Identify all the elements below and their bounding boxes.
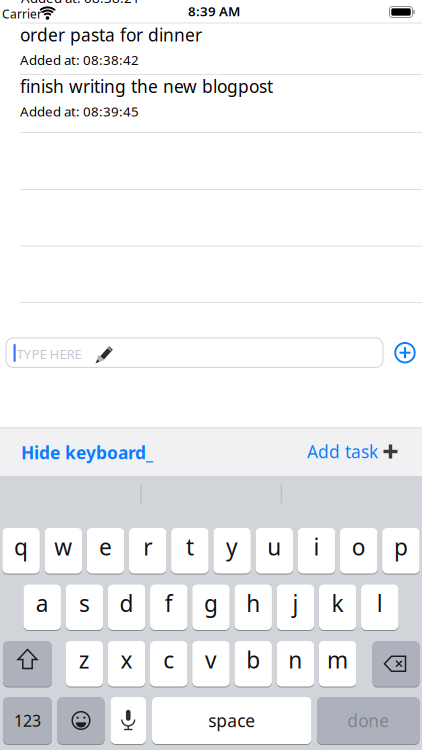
button[interactable]: l [361, 583, 399, 631]
staticText: w [54, 532, 72, 562]
staticText: u [267, 532, 281, 562]
staticText: v [205, 645, 217, 675]
staticText: x [120, 645, 132, 675]
staticText: o [352, 532, 366, 562]
button[interactable]: a [23, 583, 61, 631]
staticText: i [313, 532, 319, 562]
staticText: done [347, 709, 389, 732]
button[interactable]: h [234, 583, 272, 631]
button[interactable]: 123 [3, 696, 52, 745]
staticText: d [120, 588, 134, 618]
staticText: Carrier [2, 6, 42, 22]
staticText: j [292, 588, 298, 618]
button[interactable]: m [319, 640, 356, 687]
button[interactable] [372, 640, 419, 687]
staticText: s [79, 588, 90, 618]
button[interactable]: finish writing the new blogpost [20, 73, 422, 121]
staticText: 123 [14, 710, 41, 731]
staticText: k [332, 588, 344, 618]
staticText: q [14, 532, 28, 562]
staticText: b [246, 645, 260, 675]
staticText: y [226, 532, 238, 562]
staticText: Hide keyboard_ [21, 441, 153, 464]
staticText: l [377, 588, 383, 618]
button[interactable]: r [129, 527, 166, 574]
button[interactable]: f [150, 583, 188, 631]
button[interactable]: done [317, 696, 419, 745]
staticText: 8:39 AM [188, 2, 240, 20]
button[interactable]: y [213, 527, 251, 574]
button[interactable]: g [192, 583, 230, 631]
staticText: Add task [307, 440, 378, 463]
button[interactable]: u [256, 527, 293, 574]
staticText: Added at: 08:38:42 [20, 51, 139, 69]
staticText: m [327, 645, 348, 675]
staticText: a [36, 588, 49, 618]
staticText: z [79, 645, 90, 675]
button[interactable]: p [382, 527, 420, 574]
button[interactable]: i [298, 527, 335, 574]
staticText: t [186, 532, 194, 562]
staticText: e [99, 532, 112, 562]
staticText: space [208, 709, 255, 732]
button[interactable]: d [108, 583, 145, 631]
staticText: h [246, 588, 260, 618]
button[interactable]: Hide keyboard_ [21, 441, 153, 464]
button[interactable] [392, 340, 418, 366]
button[interactable]: n [277, 640, 314, 687]
staticText: finish writing the new blogpost [20, 75, 273, 98]
button[interactable]: j [277, 583, 314, 631]
button[interactable]: x [108, 640, 145, 687]
staticText: r [143, 532, 152, 562]
button[interactable]: k [319, 583, 356, 631]
button[interactable]: c [150, 640, 187, 687]
button[interactable] [110, 696, 146, 745]
button[interactable]: order pasta for dinner [20, 22, 422, 70]
staticText: n [288, 645, 302, 675]
button[interactable]: w [45, 527, 82, 574]
button[interactable]: q [2, 527, 40, 574]
staticText: g [204, 588, 218, 618]
button[interactable] [3, 640, 52, 687]
button[interactable]: Add task [307, 440, 398, 463]
staticText: Added at: 08:38:21 [21, 0, 140, 7]
button[interactable]: v [192, 640, 230, 687]
button[interactable]: z [66, 640, 103, 687]
staticText: order pasta for dinner [20, 23, 202, 46]
staticText: f [165, 588, 173, 618]
button[interactable]: t [171, 527, 209, 574]
staticText: Added at: 08:39:45 [20, 103, 139, 120]
button[interactable]: o [340, 527, 377, 574]
staticText: p [394, 532, 408, 562]
button[interactable]: s [66, 583, 103, 631]
staticText: c [163, 645, 174, 675]
button[interactable] [57, 696, 104, 745]
button[interactable]: TYPE HERE [6, 338, 383, 367]
staticText: TYPE HERE [16, 345, 81, 363]
button[interactable]: e [87, 527, 124, 574]
button[interactable]: b [234, 640, 272, 687]
button[interactable]: space [152, 696, 311, 745]
